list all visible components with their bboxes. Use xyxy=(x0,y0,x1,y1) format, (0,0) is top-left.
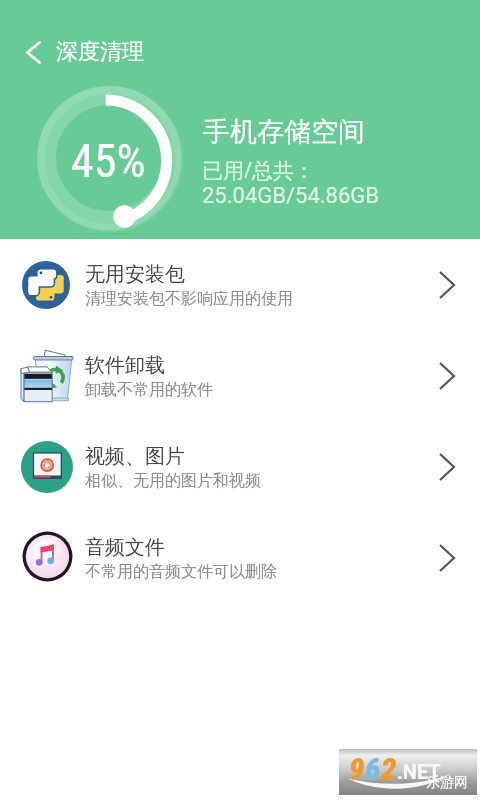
button[interactable]: 音频文件 xyxy=(0,512,480,603)
staticText: 深度清理 xyxy=(56,38,144,66)
staticText: 软件卸载 xyxy=(85,353,165,378)
staticText: 卸载不常用的软件 xyxy=(85,380,213,400)
staticText: 45% xyxy=(71,134,146,188)
staticText: 手机存储空间 xyxy=(203,115,365,149)
staticText: 乐游网 xyxy=(426,774,468,792)
button[interactable]: 软件卸载 xyxy=(0,330,480,421)
staticText: 已用/总共： xyxy=(202,156,315,185)
staticText: 不常用的音频文件可以删除 xyxy=(85,562,277,582)
button[interactable]: 无用安装包 xyxy=(0,239,480,330)
staticText: 相似、无用的图片和视频 xyxy=(85,471,261,491)
staticText: 无用安装包 xyxy=(85,262,185,287)
staticText: 清理安装包不影响应用的使用 xyxy=(85,289,293,309)
staticText: 9 xyxy=(349,751,365,787)
staticText: .NET xyxy=(397,760,441,783)
button[interactable]: Back xyxy=(13,32,144,72)
other: Back xyxy=(13,32,53,72)
staticText: 25.04GB/54.86GB xyxy=(202,183,379,209)
staticText: 6 xyxy=(365,751,381,787)
staticText: 2 xyxy=(381,751,397,787)
button[interactable]: 视频、图片 xyxy=(0,421,480,512)
staticText: 视频、图片 xyxy=(85,444,185,469)
staticText: 音频文件 xyxy=(85,535,165,560)
